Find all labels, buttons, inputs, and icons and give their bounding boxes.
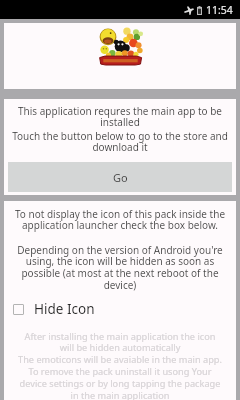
staticText: To not display the icon of this pack ins…: [12, 207, 228, 232]
staticText: 11:54: [206, 3, 233, 17]
staticText: This application requres the main app to…: [16, 104, 224, 129]
button[interactable]: Go: [8, 162, 232, 192]
other: Airplane mode: [184, 6, 194, 15]
other: Battery: [197, 6, 202, 15]
staticText: Depending on the version of Android you'…: [16, 243, 224, 292]
button[interactable]: Hide Icon: [4, 300, 236, 318]
staticText: Touch the button below to go to the stor…: [12, 129, 228, 154]
staticText: Go: [113, 170, 128, 185]
staticText: Hide Icon: [34, 300, 95, 318]
staticText: After installing the main application th…: [4, 330, 236, 400]
